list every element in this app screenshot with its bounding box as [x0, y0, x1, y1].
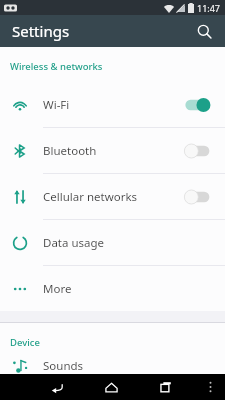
button[interactable]: Data usage [0, 220, 225, 265]
button[interactable]: Search [189, 16, 219, 46]
button[interactable]: Home [94, 374, 128, 400]
staticText: Sounds [43, 358, 213, 374]
staticText: Cellular networks [43, 189, 183, 205]
staticText: 11:47 [197, 2, 221, 14]
staticText: Wi-Fi [43, 97, 183, 113]
button[interactable]: Recent apps [149, 374, 183, 400]
staticText: Settings [12, 21, 70, 41]
button[interactable]: Toggle off [183, 141, 213, 161]
staticText: Wireless & networks [10, 60, 103, 73]
button[interactable]: Toggle off [183, 187, 213, 207]
button[interactable]: Back [40, 374, 74, 400]
button[interactable]: Bluetooth [0, 128, 225, 173]
staticText: Data usage [43, 235, 213, 251]
button[interactable]: Wi-Fi [0, 82, 225, 127]
staticText: Bluetooth [43, 143, 183, 159]
button[interactable]: More options [199, 374, 221, 400]
button[interactable]: Cellular networks [0, 174, 225, 219]
staticText: Device [10, 336, 40, 349]
button[interactable]: More [0, 266, 225, 311]
staticText: More [43, 281, 213, 297]
button[interactable]: Toggle on [183, 95, 213, 115]
button[interactable]: Sounds [0, 358, 225, 374]
